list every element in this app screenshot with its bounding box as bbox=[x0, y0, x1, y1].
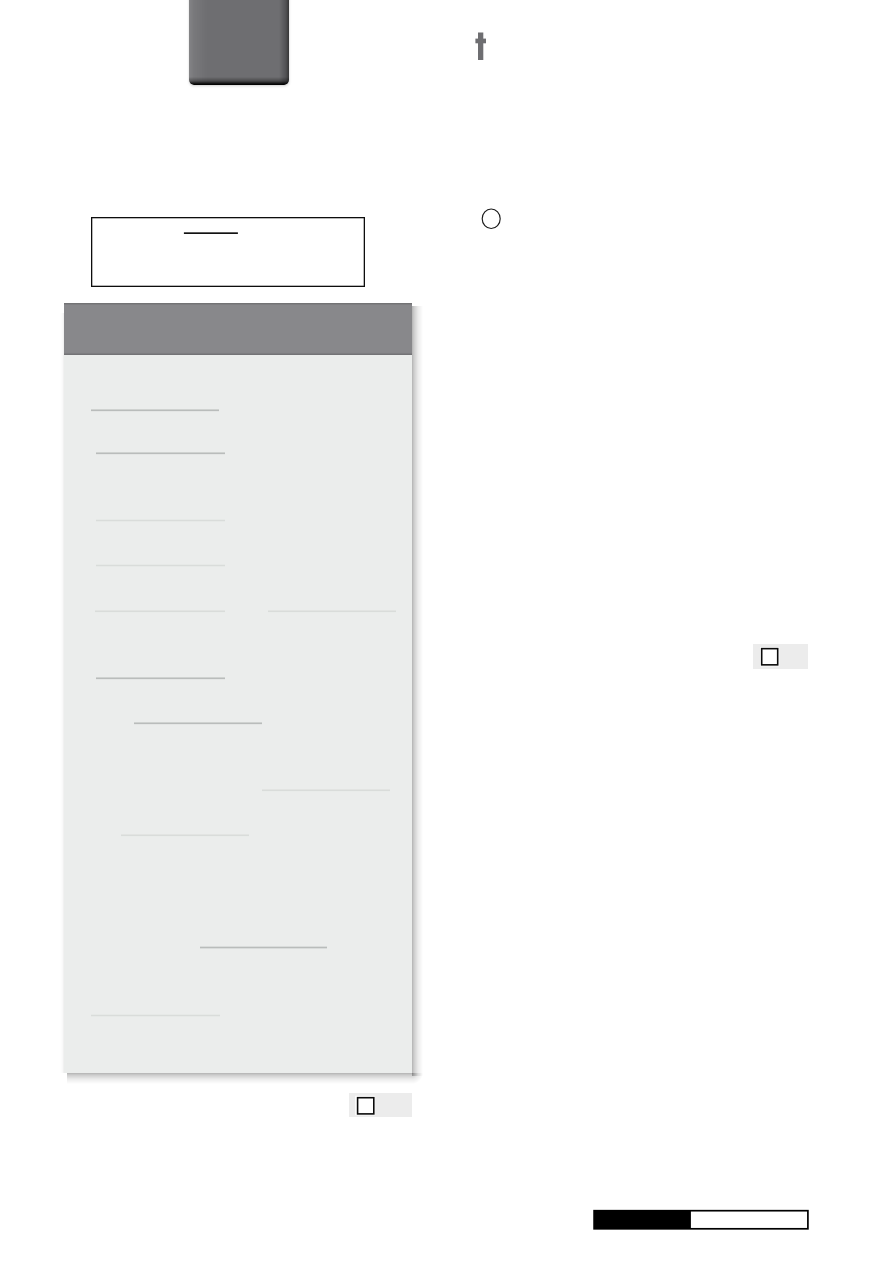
button[interactable]: Status bbox=[481, 208, 502, 230]
button[interactable]: Card title bar bbox=[64, 303, 412, 355]
button[interactable]: Banner bbox=[91, 217, 365, 287]
button[interactable]: Toggle selection bbox=[349, 1093, 412, 1117]
button[interactable]: Preview tile bbox=[189, 0, 289, 85]
button[interactable]: Progress bbox=[594, 1210, 808, 1229]
button[interactable]: Toggle option bbox=[753, 644, 808, 669]
button[interactable]: Add bbox=[470, 28, 494, 64]
